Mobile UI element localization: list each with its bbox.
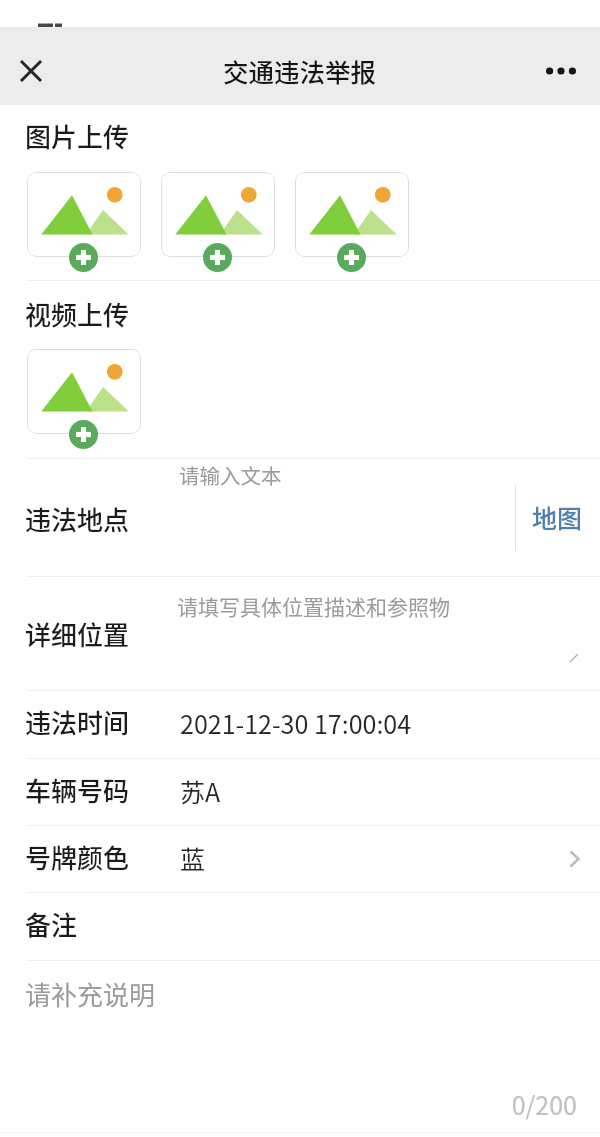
- staticText: 违法地点: [25, 500, 130, 538]
- staticText: 图片上传: [25, 117, 130, 155]
- staticText: 详细位置: [25, 615, 130, 653]
- button[interactable]: 备注: [0, 892, 600, 960]
- button[interactable]: Upload photo 3: [295, 172, 409, 257]
- button[interactable]: Add: [337, 243, 366, 272]
- staticText: 车辆号码: [25, 771, 130, 809]
- button[interactable]: 违法时间: [0, 690, 600, 758]
- button[interactable]: Add: [69, 420, 98, 449]
- button[interactable]: Add: [69, 243, 98, 272]
- button[interactable]: Upload video: [27, 349, 141, 434]
- button[interactable]: Select plate colour: [554, 839, 594, 879]
- staticText: 请补充说明: [25, 975, 156, 1013]
- button[interactable]: 请输入文本: [0, 458, 600, 576]
- staticText: 请填写具体位置描述和参照物: [177, 591, 450, 621]
- staticText: 交通违法举报: [223, 52, 377, 89]
- staticText: 备注: [25, 905, 78, 943]
- button[interactable]: Close: [7, 47, 55, 95]
- button[interactable]: 地图: [527, 488, 587, 546]
- staticText: 视频上传: [25, 295, 130, 333]
- staticText: 请输入文本: [179, 460, 282, 490]
- button[interactable]: Add: [203, 243, 232, 272]
- button[interactable]: Upload photo 2: [161, 172, 275, 257]
- staticText: 0/200: [0, 1086, 577, 1122]
- button[interactable]: More options: [537, 47, 585, 95]
- staticText: 蓝: [180, 840, 206, 876]
- staticText: 苏A: [180, 773, 221, 809]
- button[interactable]: 号牌颜色: [0, 825, 600, 892]
- button[interactable]: Upload photo 1: [27, 172, 141, 257]
- staticText: 违法时间: [25, 703, 130, 741]
- button[interactable]: 车辆号码: [0, 758, 600, 825]
- staticText: 地图: [532, 499, 583, 535]
- staticText: 号牌颜色: [25, 838, 130, 876]
- staticText: 2021-12-30 17:00:04: [180, 705, 412, 741]
- button[interactable]: 请填写具体位置描述和参照物: [0, 576, 600, 690]
